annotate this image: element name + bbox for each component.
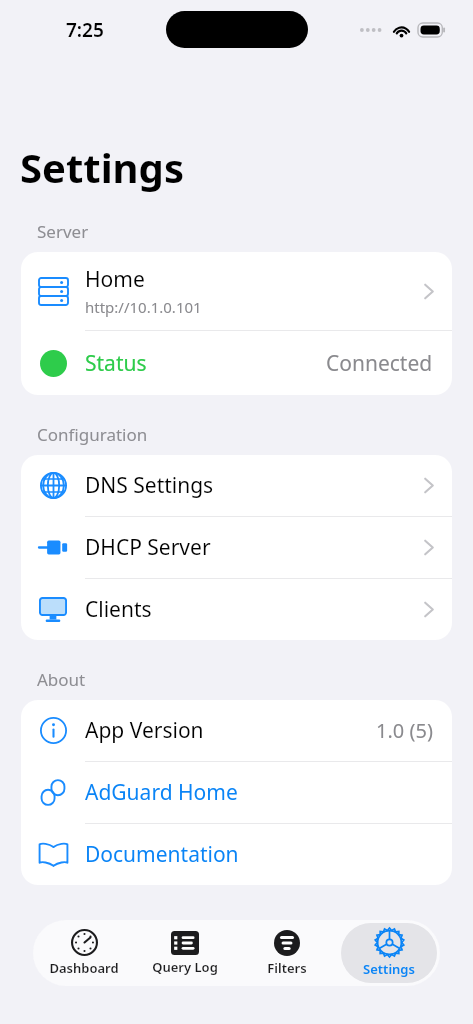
staticText: Settings (363, 960, 415, 978)
staticText: DHCP Server (85, 533, 424, 562)
button[interactable]: DHCP Server (21, 517, 452, 578)
staticText: Home (85, 265, 145, 294)
staticText: 1.0 (5) (376, 717, 433, 744)
staticText: Connected (326, 349, 433, 378)
button[interactable]: Status (21, 331, 452, 395)
staticText: Query Log (152, 958, 218, 976)
button[interactable]: App Version (21, 700, 452, 761)
staticText: Settings (20, 140, 184, 194)
staticText: http://10.1.0.101 (85, 297, 202, 317)
staticText: Filters (267, 959, 307, 977)
staticText: DNS Settings (85, 471, 424, 500)
staticText: Clients (85, 595, 424, 624)
button[interactable]: Home (21, 252, 452, 330)
staticText: About (37, 668, 86, 691)
staticText: Configuration (37, 423, 148, 446)
button[interactable]: Clients (21, 579, 452, 640)
staticText: Documentation (85, 840, 452, 869)
staticText: Dashboard (49, 959, 119, 977)
staticText: 7:25 (66, 17, 104, 43)
button[interactable]: DNS Settings (21, 455, 452, 516)
button[interactable]: AdGuard Home (21, 762, 452, 823)
staticText: AdGuard Home (85, 778, 452, 807)
button[interactable]: Dashboard (36, 923, 131, 983)
staticText: Server (37, 220, 89, 243)
button[interactable]: Query Log (137, 923, 233, 983)
button[interactable]: Filters (239, 923, 335, 983)
staticText: Status (85, 349, 326, 378)
button[interactable]: Settings (341, 923, 437, 983)
button[interactable]: Documentation (21, 824, 452, 885)
staticText: App Version (85, 716, 376, 745)
